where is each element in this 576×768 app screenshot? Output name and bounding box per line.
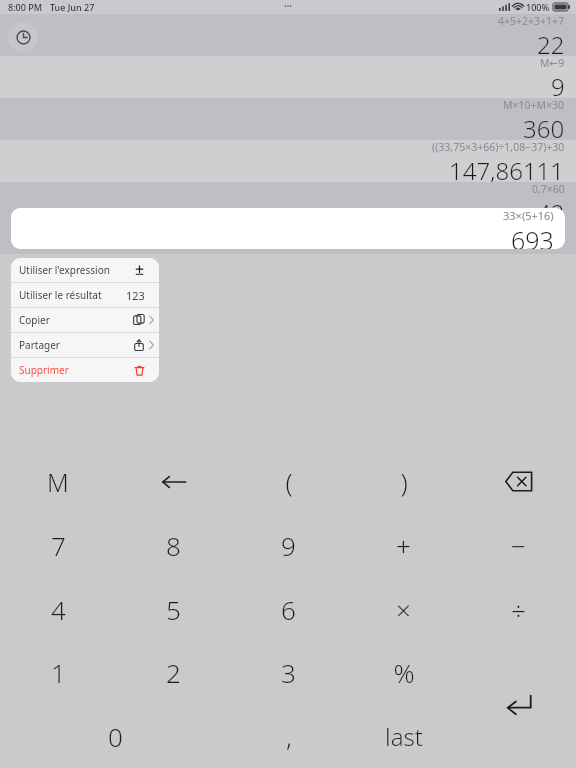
staticText: 9	[281, 528, 296, 563]
button[interactable]: 1	[0, 641, 116, 704]
button[interactable]: )	[346, 450, 461, 513]
button[interactable]: M	[0, 450, 116, 513]
button[interactable]: 4	[0, 577, 116, 641]
button[interactable]: (	[231, 450, 346, 513]
button[interactable]: 9	[231, 513, 346, 577]
staticText: 8	[166, 528, 181, 563]
button[interactable]: 6	[231, 577, 346, 641]
staticText: 2	[166, 655, 181, 690]
staticText: (	[285, 464, 293, 499]
button[interactable]: Enter	[461, 641, 576, 768]
button[interactable]: ((33,75×3+66)÷1,08−37)+30	[0, 140, 576, 182]
staticText: 33×(5+16)	[503, 208, 554, 223]
staticText: 1	[51, 655, 66, 690]
staticText: −	[511, 528, 526, 563]
staticText: 8:00 PM	[8, 1, 42, 13]
button[interactable]: 3	[231, 641, 346, 704]
staticText: %	[393, 655, 415, 690]
staticText: 693	[511, 223, 554, 249]
staticText: Utiliser le résultat	[19, 288, 102, 302]
staticText: 123	[126, 288, 145, 303]
button[interactable]: ,	[231, 704, 346, 768]
staticText: last	[385, 720, 423, 753]
button[interactable]: −	[461, 513, 576, 577]
staticText: ((33,75×3+66)÷1,08−37)+30	[432, 140, 565, 154]
staticText: 0	[108, 719, 123, 754]
staticText: M×10+M×30	[503, 98, 565, 112]
staticText: 22	[537, 28, 565, 56]
button[interactable]: M×10+M×30	[0, 98, 576, 140]
staticText: 9	[551, 70, 565, 98]
staticText: 100%	[526, 1, 550, 13]
staticText: 7	[51, 528, 66, 563]
staticText: Partager	[19, 338, 60, 352]
button[interactable]: ×	[346, 577, 461, 641]
staticText: 147,86111	[449, 154, 565, 182]
button[interactable]: %	[346, 641, 461, 704]
staticText: +	[396, 528, 411, 563]
staticText: 360	[523, 112, 565, 140]
staticText: )	[400, 464, 408, 499]
button[interactable]: +	[346, 513, 461, 577]
staticText: 4	[51, 592, 66, 627]
staticText: 6	[281, 592, 296, 627]
button[interactable]: 4+5+2+3+1+7	[0, 14, 576, 56]
staticText: ,	[286, 719, 292, 754]
staticText: 3	[281, 655, 296, 690]
button[interactable]: Backspace arrow	[116, 450, 231, 513]
staticText: Supprimer	[19, 363, 69, 377]
button[interactable]: Supprimer	[11, 358, 159, 382]
staticText: 0,7×60	[532, 182, 565, 196]
button[interactable]: Utiliser le résultat	[11, 283, 159, 307]
button[interactable]: Delete	[461, 450, 576, 513]
staticText: 42	[537, 196, 565, 224]
button[interactable]: last	[346, 704, 461, 768]
button[interactable]: ÷	[461, 577, 576, 641]
button[interactable]: 7	[0, 513, 116, 577]
staticText: Tue Jun 27	[50, 1, 95, 13]
staticText: Copier	[19, 313, 50, 327]
staticText: Utiliser l'expression	[19, 263, 110, 277]
button[interactable]: 8	[116, 513, 231, 577]
staticText: •••	[284, 2, 292, 12]
button[interactable]: Partager	[11, 333, 159, 357]
button[interactable]: M←9	[0, 56, 576, 98]
staticText: 5	[166, 592, 181, 627]
staticText: M	[47, 465, 69, 499]
staticText: ×	[396, 592, 411, 627]
button[interactable]: History	[8, 22, 38, 52]
staticText: 4+5+2+3+1+7	[498, 14, 565, 28]
button[interactable]: 0,7×60	[0, 182, 576, 224]
button[interactable]: 33×(5+16)	[11, 208, 565, 249]
button[interactable]: 5	[116, 577, 231, 641]
button[interactable]: 2	[116, 641, 231, 704]
staticText: ÷	[511, 592, 526, 627]
button[interactable]: Copier	[11, 308, 159, 332]
button[interactable]: 0	[0, 704, 231, 768]
staticText: M←9	[540, 56, 565, 70]
button[interactable]: Utiliser l'expression	[11, 258, 159, 282]
